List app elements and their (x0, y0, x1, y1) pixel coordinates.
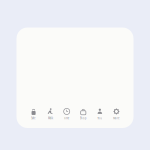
staticText: Walk (48, 116, 53, 120)
button[interactable]: More (108, 108, 125, 120)
staticText: More (113, 116, 120, 120)
staticText: Shop (80, 116, 87, 120)
staticText: You (97, 116, 102, 120)
button[interactable]: Safe (25, 108, 42, 120)
button[interactable]: Time (58, 108, 75, 120)
button[interactable]: You (92, 108, 108, 120)
staticText: Time (64, 116, 70, 120)
button[interactable]: Walk (42, 108, 58, 120)
button[interactable]: Shop (75, 108, 92, 120)
staticText: Safe (31, 116, 36, 120)
